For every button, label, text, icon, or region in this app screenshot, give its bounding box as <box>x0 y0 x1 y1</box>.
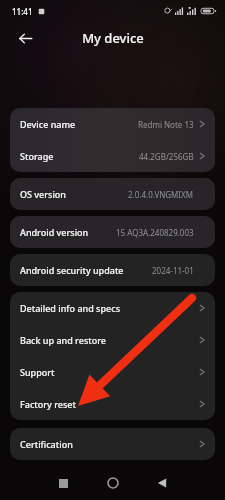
button[interactable]: Certification <box>10 428 215 460</box>
staticText: Device name <box>20 118 76 130</box>
staticText: 2.0.4.0.VNGMIXM <box>128 189 194 200</box>
button[interactable]: Home <box>102 472 124 494</box>
staticText: Certification <box>20 438 73 450</box>
button[interactable]: Android security update <box>10 254 215 286</box>
button[interactable]: Android version <box>10 216 215 248</box>
staticText: 2024-11-01 <box>152 265 194 276</box>
button[interactable]: Back <box>151 472 173 494</box>
button[interactable]: Device name <box>10 108 215 140</box>
staticText: Android version <box>20 226 89 238</box>
staticText: Android security update <box>20 264 124 276</box>
staticText: Storage <box>20 150 54 162</box>
staticText: My device <box>82 29 144 47</box>
staticText: Factory reset <box>20 398 76 410</box>
staticText: 15 AQ3A.240829.003 <box>116 227 194 238</box>
staticText: OS version <box>20 188 67 200</box>
button[interactable]: OS version <box>10 178 215 210</box>
staticText: Back up and restore <box>20 334 107 346</box>
staticText: 11:41 <box>12 6 33 17</box>
button[interactable]: Detailed info and specs <box>10 292 215 324</box>
button[interactable]: Storage <box>10 140 215 172</box>
staticText: Detailed info and specs <box>20 302 121 314</box>
staticText: 44.2GB/256GB <box>139 151 194 162</box>
button[interactable]: Factory reset <box>10 388 215 420</box>
button[interactable]: Back up and restore <box>10 324 215 356</box>
button[interactable]: Back <box>12 25 38 51</box>
staticText: Support <box>20 366 55 378</box>
staticText: Redmi Note 13 <box>138 119 194 130</box>
button[interactable]: Support <box>10 356 215 388</box>
button[interactable]: Recent apps <box>52 472 74 494</box>
